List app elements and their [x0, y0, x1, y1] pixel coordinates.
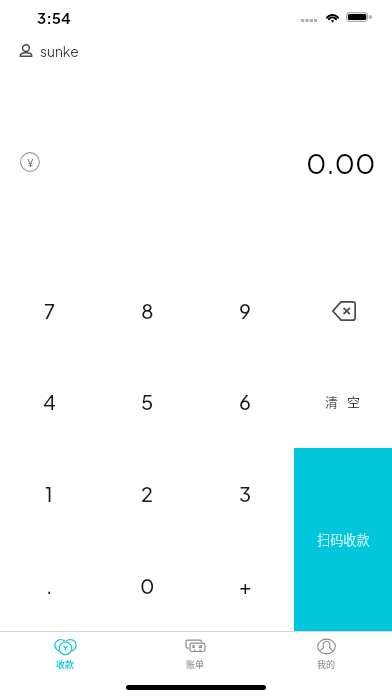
button[interactable]: 扫码收款: [294, 448, 392, 631]
button[interactable]: Currency: [20, 152, 40, 172]
button[interactable]: 7: [0, 265, 98, 356]
staticText: 我的: [317, 658, 336, 671]
button[interactable]: 我的: [261, 632, 392, 677]
staticText: 1: [45, 481, 53, 506]
staticText: 6: [239, 389, 251, 414]
staticText: 7: [44, 298, 55, 323]
button[interactable]: 6: [196, 356, 294, 447]
button[interactable]: Backspace: [320, 293, 366, 329]
staticText: 9: [239, 298, 251, 323]
button[interactable]: 收款: [0, 632, 130, 677]
staticText: 3: [239, 481, 252, 506]
staticText: 0.00: [306, 145, 376, 180]
button[interactable]: 8: [98, 265, 196, 356]
staticText: 扫码收款: [317, 530, 370, 549]
button[interactable]: 2: [98, 447, 196, 539]
staticText: 2: [141, 481, 153, 506]
button[interactable]: 4: [0, 356, 98, 447]
staticText: 清 空: [325, 392, 361, 411]
staticText: 3:54: [37, 8, 71, 27]
staticText: .: [46, 573, 53, 598]
staticText: 8: [141, 298, 154, 323]
button[interactable]: 3: [196, 447, 294, 539]
staticText: ¥: [27, 155, 34, 170]
button[interactable]: 0: [98, 539, 196, 631]
button[interactable]: +: [196, 539, 294, 631]
staticText: 0: [140, 573, 155, 598]
button[interactable]: .: [0, 539, 98, 631]
button[interactable]: 清 空: [317, 386, 369, 417]
staticText: 5: [141, 389, 154, 414]
staticText: sunke: [40, 43, 79, 60]
button[interactable]: 账单: [130, 632, 261, 677]
staticText: 4: [43, 389, 56, 414]
button[interactable]: 1: [0, 447, 98, 539]
staticText: 账单: [186, 658, 205, 671]
button[interactable]: 9: [196, 265, 294, 356]
button[interactable]: sunke: [0, 38, 91, 64]
staticText: 收款: [56, 658, 75, 671]
button[interactable]: 5: [98, 356, 196, 447]
staticText: +: [239, 573, 252, 598]
